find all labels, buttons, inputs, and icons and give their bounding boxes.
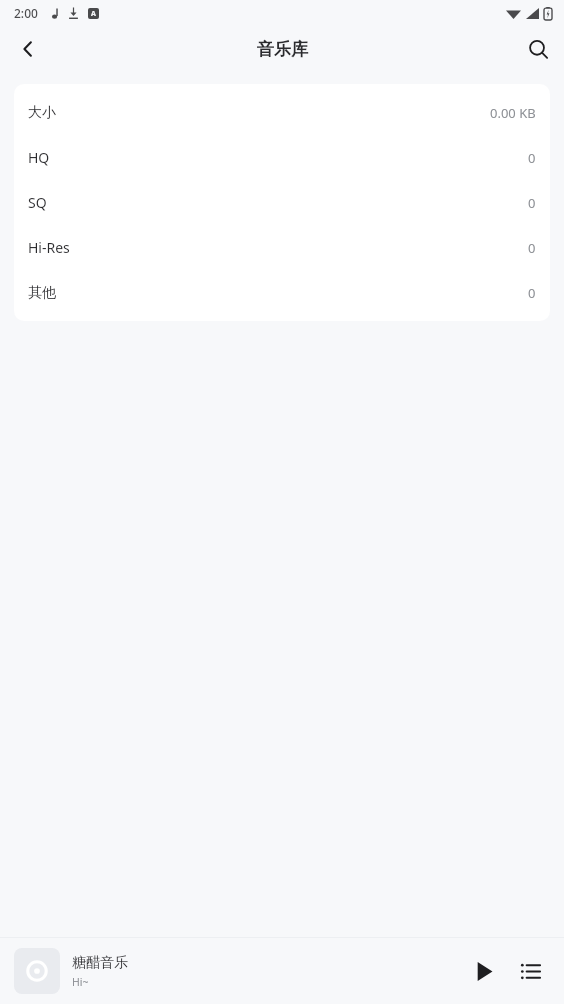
staticText: A <box>91 9 96 19</box>
button[interactable]: Back <box>8 29 48 69</box>
button[interactable]: 大小 <box>14 90 550 135</box>
button[interactable]: Play <box>462 949 506 993</box>
button[interactable]: Album art <box>14 948 60 994</box>
staticText: 0.00 KB <box>490 104 536 122</box>
button[interactable]: 糖醋音乐 <box>72 954 462 989</box>
staticText: 0 <box>528 149 536 167</box>
button[interactable]: 其他 <box>14 270 550 315</box>
staticText: 0 <box>528 239 536 257</box>
staticText: SQ <box>28 193 47 212</box>
staticText: 大小 <box>28 104 56 122</box>
staticText: 0 <box>528 284 536 302</box>
button[interactable]: Search <box>518 29 558 69</box>
staticText: HQ <box>28 148 50 167</box>
staticText: Hi~ <box>72 975 89 989</box>
staticText: 0 <box>528 194 536 212</box>
staticText: 其他 <box>28 284 56 302</box>
button[interactable]: SQ <box>14 180 550 225</box>
button[interactable]: Playlist <box>508 949 552 993</box>
staticText: Hi-Res <box>28 238 70 257</box>
staticText: 2:00 <box>14 5 38 21</box>
staticText: 糖醋音乐 <box>72 954 128 972</box>
button[interactable]: Hi-Res <box>14 225 550 270</box>
button[interactable]: HQ <box>14 135 550 180</box>
staticText: 音乐库 <box>257 39 308 60</box>
